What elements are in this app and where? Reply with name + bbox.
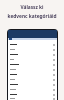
- button[interactable]: [8, 97, 57, 100]
- staticText: Válassz ki: [0, 4, 64, 11]
- button[interactable]: [8, 87, 57, 92]
- button[interactable]: [8, 52, 57, 57]
- button[interactable]: [8, 47, 57, 52]
- button[interactable]: [8, 62, 57, 67]
- staticText: kedvenc kategóriáid: [0, 13, 64, 20]
- button[interactable]: [8, 57, 57, 62]
- button[interactable]: [8, 82, 57, 87]
- button[interactable]: [8, 67, 57, 72]
- button[interactable]: [8, 92, 57, 97]
- button[interactable]: [8, 72, 57, 77]
- button[interactable]: [8, 42, 57, 47]
- button[interactable]: [8, 77, 57, 82]
